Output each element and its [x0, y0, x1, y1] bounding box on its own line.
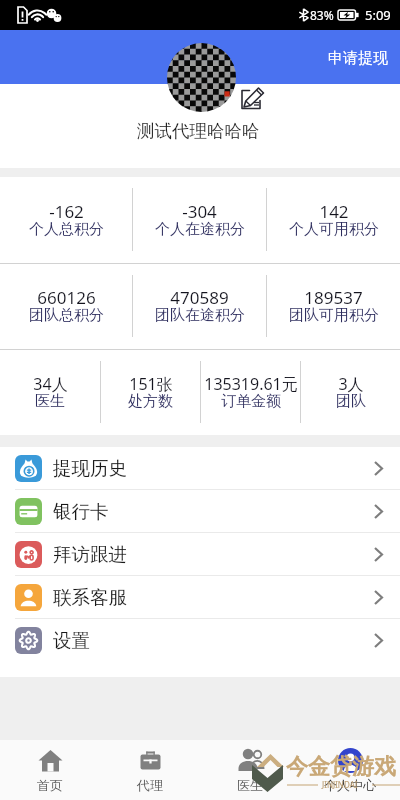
staticText: 医生	[237, 777, 263, 793]
button[interactable]: 142	[267, 177, 400, 263]
button[interactable]: 申请提现	[322, 45, 394, 72]
staticText: 3人	[338, 373, 364, 395]
staticText: 今金贷游戏	[286, 753, 396, 781]
staticText: 医生	[35, 392, 65, 411]
staticText: 联系客服	[53, 586, 127, 609]
staticText: 团队	[336, 392, 366, 411]
staticText: 个人在途积分	[155, 220, 245, 239]
button[interactable]: 银行卡	[0, 490, 400, 532]
button[interactable]: 联系客服	[0, 576, 400, 618]
button[interactable]: 医生	[200, 740, 300, 800]
staticText: -162	[49, 200, 84, 223]
staticText: 34人	[33, 373, 68, 395]
staticText: 团队在途积分	[155, 306, 245, 325]
staticText: 142	[319, 200, 349, 223]
button[interactable]: 135319.61元	[201, 350, 300, 435]
staticText: 团队可用积分	[289, 306, 379, 325]
button[interactable]: 首页	[0, 740, 100, 800]
staticText: 代理	[137, 777, 163, 793]
staticText: 测试代理哈哈哈	[137, 120, 260, 142]
staticText: 个人中心	[324, 777, 376, 793]
button[interactable]: 3人	[301, 350, 400, 435]
staticText: 83%	[310, 7, 334, 23]
button[interactable]: 470589	[133, 264, 266, 349]
button[interactable]: Profile photo	[167, 43, 236, 112]
staticText: 订单金额	[221, 392, 281, 411]
staticText: 151张	[129, 373, 173, 395]
staticText: 470589	[170, 286, 229, 309]
button[interactable]: 提现历史	[0, 447, 400, 489]
button[interactable]: 个人中心	[300, 740, 400, 800]
button[interactable]: 151张	[101, 350, 200, 435]
staticText: 处方数	[128, 392, 173, 411]
button[interactable]: 660126	[0, 264, 132, 349]
button[interactable]: 设置	[0, 619, 400, 661]
button[interactable]: -304	[133, 177, 266, 263]
staticText: 银行卡	[53, 500, 109, 523]
staticText: JINJINDAI	[322, 779, 358, 790]
staticText: 135319.61元	[204, 373, 298, 395]
button[interactable]: Edit profile	[239, 85, 264, 110]
staticText: 首页	[37, 777, 63, 793]
staticText: 团队总积分	[29, 306, 104, 325]
button[interactable]: 34人	[0, 350, 100, 435]
button[interactable]: 189537	[267, 264, 400, 349]
button[interactable]: 拜访跟进	[0, 533, 400, 575]
button[interactable]: 代理	[100, 740, 200, 800]
staticText: 申请提现	[328, 49, 388, 68]
staticText: 个人可用积分	[289, 220, 379, 239]
staticText: 个人总积分	[29, 220, 104, 239]
button[interactable]: -162	[0, 177, 132, 263]
staticText: 5:09	[365, 6, 391, 24]
staticText: 设置	[53, 629, 90, 652]
staticText: 提现历史	[53, 457, 127, 480]
staticText: -304	[182, 200, 217, 223]
staticText: 189537	[304, 286, 363, 309]
staticText: 660126	[37, 286, 96, 309]
staticText: 拜访跟进	[53, 543, 127, 566]
